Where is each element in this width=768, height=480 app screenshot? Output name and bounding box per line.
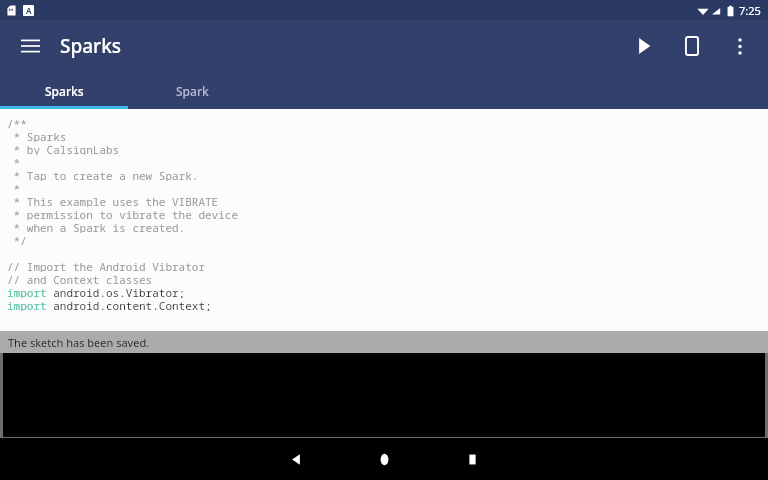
staticText: Spark [176,83,209,99]
staticText: * permission to vibrate the device [7,207,238,220]
button[interactable]: Back [252,438,340,480]
staticText: * when a Spark is created. [7,220,186,233]
staticText: /** [7,116,27,129]
staticText: Sparks [45,83,84,99]
staticText: * by CalsignLabs [7,142,120,155]
staticText: */ [7,233,27,246]
button[interactable]: Recent apps [428,438,516,480]
button[interactable]: Open navigation menu [10,26,50,66]
staticText: The sketch has been saved. [8,335,150,350]
staticText: 7:25 [739,3,761,18]
staticText: A [26,5,32,16]
staticText: // Import the Android Vibrator [7,259,205,272]
staticText: import android.content.Context; [7,298,212,311]
staticText: * [7,181,21,194]
button[interactable]: Spark [128,72,256,109]
staticText: // and Context classes [7,272,153,285]
staticText: import android.os.Vibrator; [7,285,186,298]
button[interactable]: Home [340,438,428,480]
button[interactable]: Run sketch [620,22,668,70]
staticText: * Tap to create a new Spark. [7,168,199,181]
button[interactable]: Sparks [0,72,128,109]
staticText: * [7,155,21,168]
staticText: * This example uses the VIBRATE [7,194,219,207]
staticText: * Sparks [7,129,67,142]
button[interactable]: Select device [668,22,716,70]
staticText: Sparks [60,33,121,59]
button[interactable]: More options [716,22,764,70]
